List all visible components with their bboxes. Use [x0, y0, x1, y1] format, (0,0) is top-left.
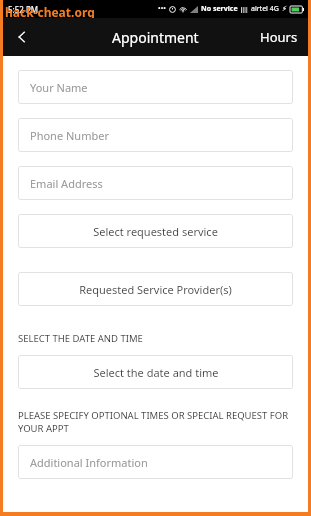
- staticText: Select requested service: [93, 224, 218, 239]
- staticText: Your Name: [30, 80, 88, 95]
- button[interactable]: Select requested service: [18, 214, 293, 248]
- staticText: SELECT THE DATE AND TIME: [18, 332, 143, 345]
- staticText: Email Address: [30, 176, 103, 191]
- staticText: Hours: [260, 28, 298, 46]
- staticText: No service: [201, 4, 238, 14]
- staticText: Select the date and time: [93, 365, 219, 380]
- button[interactable]: Phone Number: [18, 118, 293, 152]
- staticText: PLEASE SPECIFY OPTIONAL TIMES OR SPECIAL…: [18, 409, 293, 435]
- button[interactable]: Additional Information: [18, 445, 293, 479]
- staticText: Appointment: [112, 28, 199, 47]
- staticText: Phone Number: [30, 128, 109, 143]
- staticText: Additional Information: [30, 455, 148, 470]
- staticText: airtel 4G: [251, 4, 279, 14]
- staticText: hack-cheat.org: [5, 4, 95, 18]
- button[interactable]: Hours: [250, 20, 308, 54]
- button[interactable]: Back: [3, 18, 41, 56]
- staticText: •••: [158, 4, 166, 14]
- button[interactable]: Email Address: [18, 166, 293, 200]
- staticText: 5:52 PM: [8, 4, 39, 15]
- button[interactable]: Requested Service Provider(s): [18, 272, 293, 306]
- staticText: ⚡: [282, 5, 287, 13]
- button[interactable]: Select the date and time: [18, 355, 293, 389]
- button[interactable]: Your Name: [18, 70, 293, 104]
- staticText: Requested Service Provider(s): [79, 282, 232, 297]
